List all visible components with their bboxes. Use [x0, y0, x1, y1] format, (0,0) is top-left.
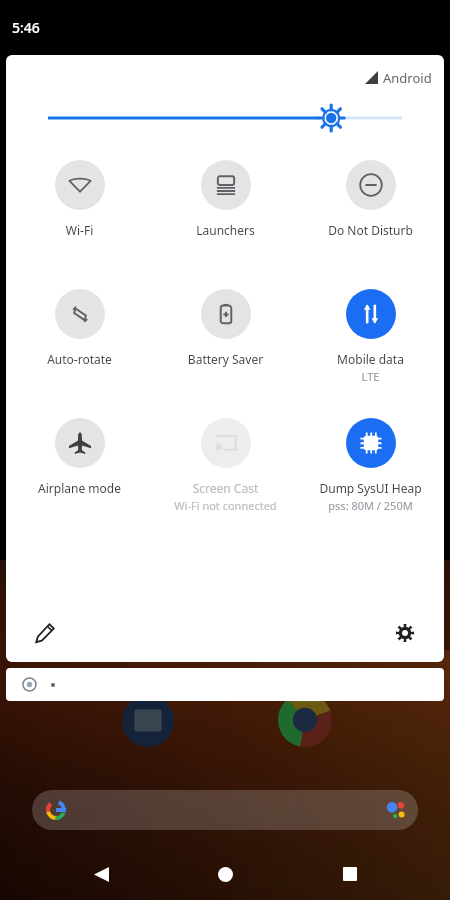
button[interactable]: Screen Cast — [154, 416, 297, 515]
button[interactable]: Settings — [388, 616, 422, 650]
staticText: Wi-Fi — [8, 222, 151, 238]
staticText: Airplane mode — [8, 480, 151, 496]
staticText: Battery Saver — [154, 351, 297, 367]
button[interactable]: Battery Saver — [154, 287, 297, 369]
staticText: 5:46 — [12, 18, 40, 37]
staticText: Auto-rotate — [8, 351, 151, 367]
staticText: Mobile data — [299, 351, 442, 367]
button[interactable]: Auto-rotate — [8, 287, 151, 369]
button[interactable]: Dump SysUI Heap — [299, 416, 442, 515]
button[interactable]: Edit tiles — [28, 616, 62, 650]
staticText: Screen Cast — [154, 480, 297, 496]
staticText: Wi-Fi not connected — [154, 498, 297, 513]
button[interactable]: Brightness — [48, 100, 402, 136]
button[interactable]: Mobile data — [299, 287, 442, 386]
staticText: Android — [383, 69, 432, 87]
button[interactable]: Back — [77, 850, 125, 898]
button[interactable] — [32, 790, 418, 830]
staticText: Do Not Disturb — [299, 222, 442, 238]
button[interactable]: Do Not Disturb — [299, 158, 442, 240]
staticText: pss: 80M / 250M — [299, 498, 442, 513]
button[interactable]: Home — [201, 850, 249, 898]
staticText: Dump SysUI Heap — [299, 480, 442, 496]
button[interactable] — [6, 668, 444, 701]
button[interactable]: Wi-Fi — [8, 158, 151, 240]
button[interactable]: Recent apps — [326, 850, 374, 898]
button[interactable]: Airplane mode — [8, 416, 151, 498]
staticText: LTE — [299, 369, 442, 384]
staticText: Launchers — [154, 222, 297, 238]
button[interactable]: Launchers — [154, 158, 297, 240]
